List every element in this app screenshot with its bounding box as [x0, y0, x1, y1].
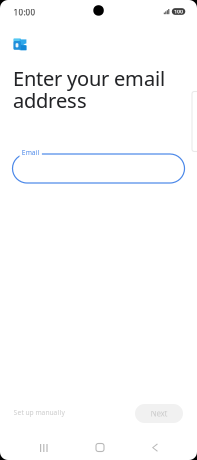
- button[interactable]: Home: [87, 434, 113, 460]
- staticText: 100: [174, 8, 183, 15]
- button[interactable]: Next: [135, 404, 183, 423]
- staticText: Set up manually: [13, 408, 64, 417]
- button[interactable]: Set up manually: [9, 402, 68, 423]
- button[interactable]: Recents: [31, 435, 57, 460]
- staticText: Enter your email: [13, 65, 165, 92]
- staticText: 10:00: [13, 7, 35, 18]
- staticText: Next: [150, 408, 167, 419]
- staticText: address: [13, 87, 87, 114]
- button[interactable]: Back: [142, 434, 167, 460]
- staticText: Email: [22, 148, 40, 157]
